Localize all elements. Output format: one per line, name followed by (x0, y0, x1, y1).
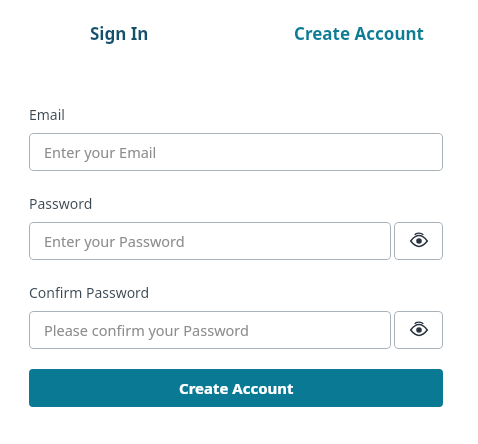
button[interactable]: Show password (394, 222, 443, 260)
button[interactable]: Enter your Password (29, 222, 391, 260)
staticText: Password (29, 194, 93, 213)
button[interactable]: Enter your Email (29, 133, 443, 171)
staticText: Create Account (179, 378, 294, 398)
staticText: Create Account (294, 22, 424, 45)
staticText: Sign In (90, 22, 149, 45)
button[interactable]: Sign In (0, 20, 239, 46)
staticText: Please confirm your Password (44, 320, 249, 340)
button[interactable]: Please confirm your Password (29, 311, 391, 349)
staticText: Enter your Email (44, 142, 157, 162)
staticText: Email (29, 105, 65, 124)
staticText: Enter your Password (44, 231, 185, 251)
button[interactable]: Create Account (29, 369, 443, 407)
button[interactable]: Show confirm password (394, 311, 443, 349)
button[interactable]: Create Account (239, 20, 478, 46)
staticText: Confirm Password (29, 283, 150, 302)
